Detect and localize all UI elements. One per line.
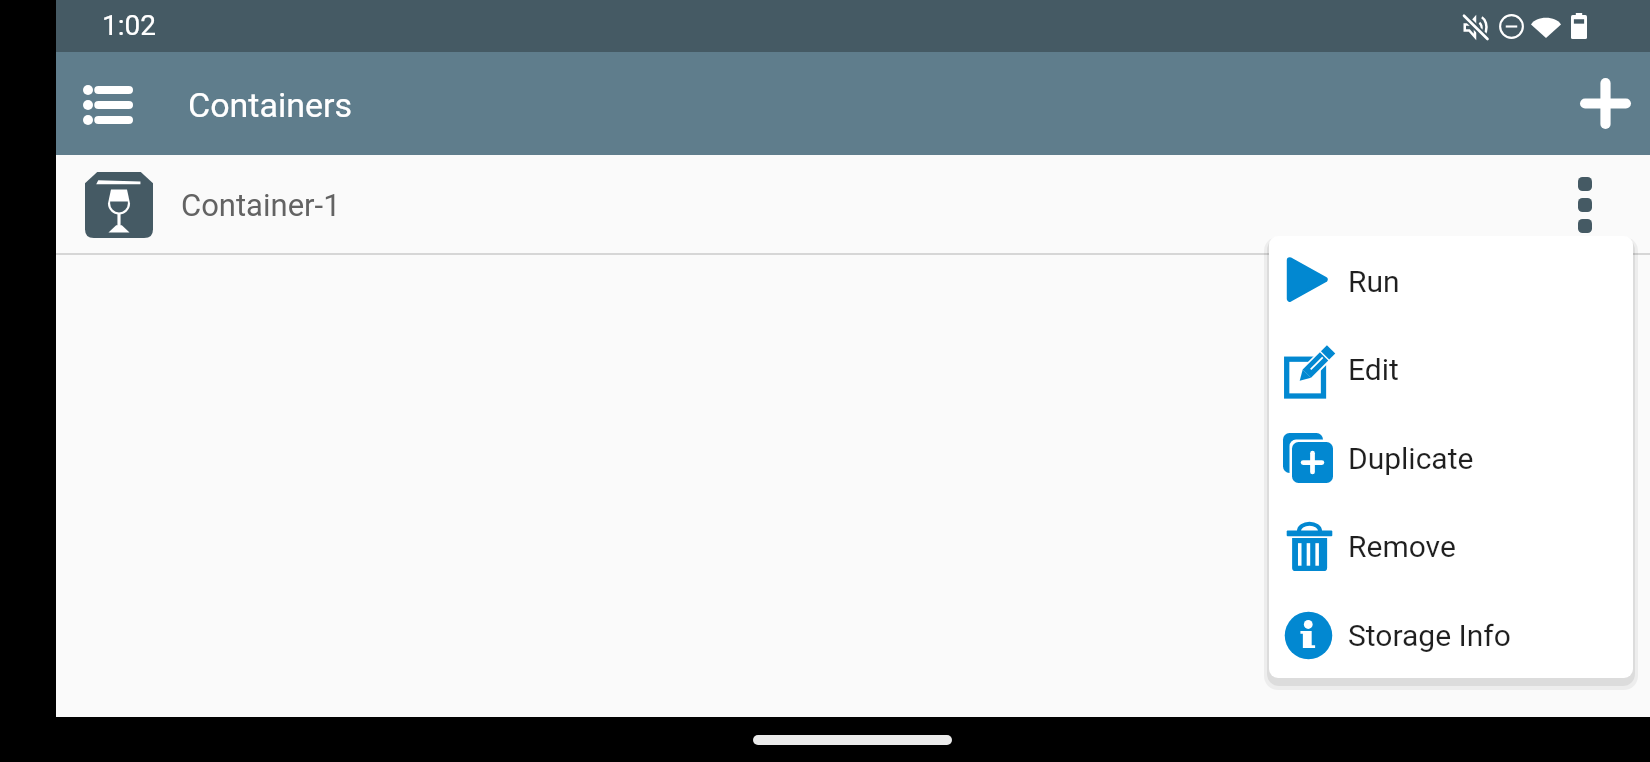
button[interactable]: Navigation menu <box>68 70 148 140</box>
button[interactable]: Remove <box>1269 502 1633 591</box>
button[interactable]: More options <box>1550 170 1620 240</box>
button[interactable]: Storage Info <box>1269 591 1633 678</box>
staticText: Storage Info <box>1348 618 1511 653</box>
staticText: 1:02 <box>102 9 156 42</box>
button[interactable]: Add container <box>1570 68 1640 138</box>
staticText: Remove <box>1348 529 1456 564</box>
button[interactable]: Run <box>1269 237 1633 326</box>
button[interactable]: Container-1 <box>56 155 1650 255</box>
staticText: Run <box>1348 264 1400 299</box>
staticText: Container-1 <box>181 187 341 223</box>
staticText: Duplicate <box>1348 441 1474 476</box>
button[interactable]: Edit <box>1269 325 1633 414</box>
staticText: Edit <box>1348 352 1399 387</box>
button[interactable]: Duplicate <box>1269 414 1633 503</box>
staticText: Containers <box>188 85 353 125</box>
